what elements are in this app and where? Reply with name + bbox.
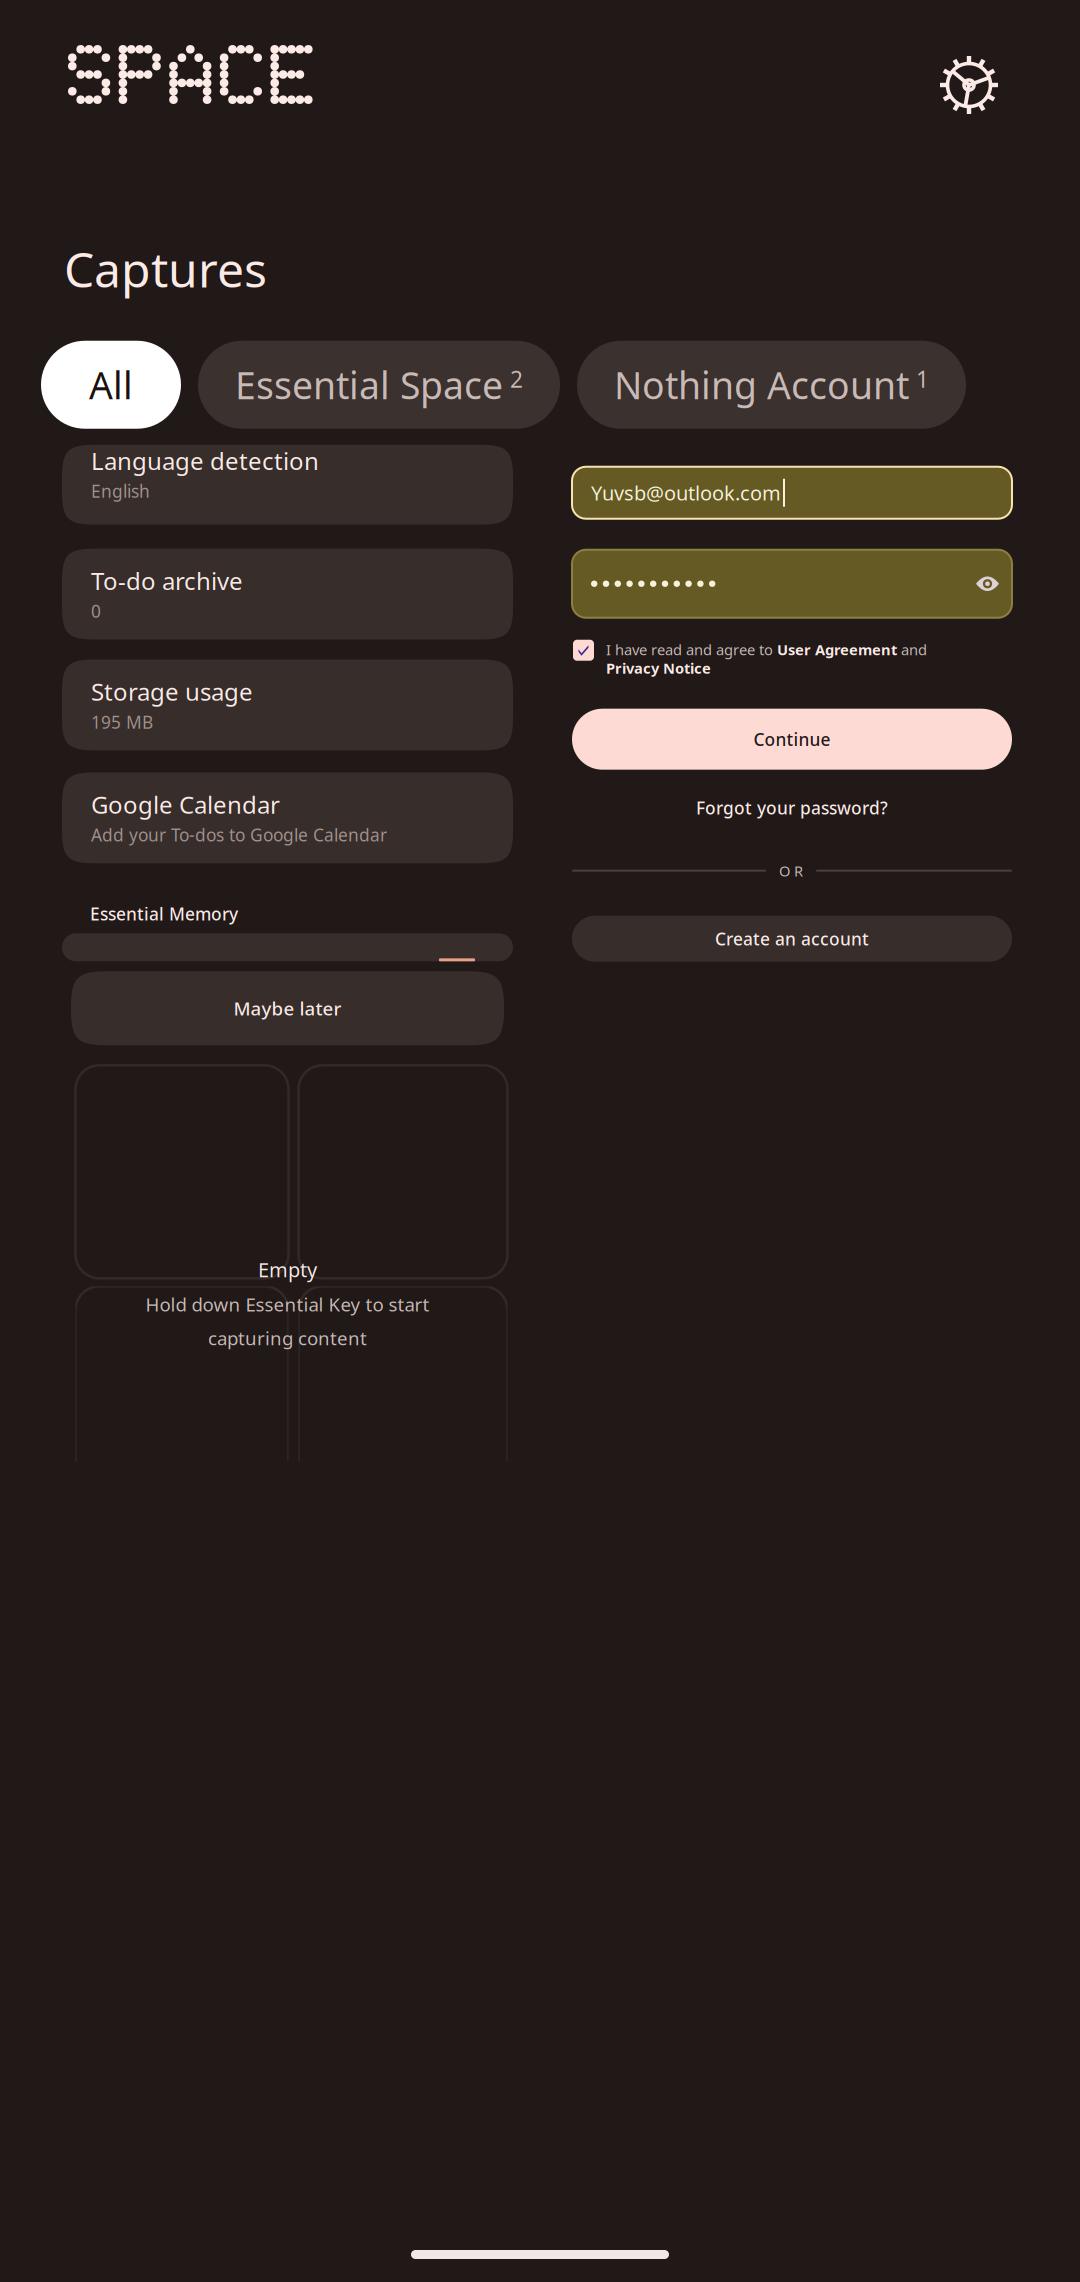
staticText: Empty [258, 1256, 317, 1283]
staticText: English [91, 480, 150, 503]
staticText: Continue [753, 728, 830, 751]
staticText: Hold down Essential Key to start [145, 1292, 429, 1317]
staticText: capturing content [208, 1326, 367, 1350]
staticText: Language detection [91, 445, 319, 477]
staticText: All [89, 360, 133, 410]
staticText: Forgot your password? [696, 796, 888, 819]
staticText: To-do archive [91, 565, 243, 596]
button[interactable]: Continue [572, 709, 1012, 770]
button[interactable]: Settings [939, 0, 999, 115]
staticText: Maybe later [233, 996, 341, 1021]
staticText: Nothing Account [614, 360, 909, 410]
button[interactable]: Nothing Account [577, 341, 966, 429]
staticText: Add your To-dos to Google Calendar [91, 823, 387, 846]
staticText: 2 [510, 364, 523, 394]
staticText: Storage usage [91, 675, 253, 707]
staticText: 1 [916, 364, 929, 394]
button[interactable]: Maybe later [71, 971, 504, 1045]
staticText: Essential Memory [90, 902, 238, 925]
button[interactable]: Essential Space [198, 341, 560, 429]
staticText: Google Calendar [91, 788, 280, 820]
staticText: I have read and agree to [606, 640, 777, 659]
button[interactable]: All [41, 341, 181, 429]
button[interactable]: Forgot your password? [572, 786, 1012, 830]
staticText: Essential Space [235, 360, 503, 410]
button[interactable]: Storage usage [62, 659, 513, 750]
button[interactable]: To-do archive [62, 549, 513, 639]
button[interactable]: Google Calendar [62, 772, 513, 863]
staticText: Yuvsb@outlook.com [591, 479, 781, 506]
button[interactable]: Language detection [62, 445, 513, 525]
staticText: User Agreement [777, 640, 897, 659]
staticText: 0 [91, 599, 101, 622]
button[interactable]: Agree to the user agreement [573, 640, 594, 661]
staticText: and [897, 640, 927, 659]
button[interactable]: Create an account [572, 916, 1012, 962]
staticText: 195 MB [91, 710, 153, 733]
staticText: Captures [64, 237, 267, 301]
staticText: Privacy Notice [606, 658, 711, 678]
staticText: Create an account [715, 927, 869, 950]
staticText: O R [779, 861, 803, 880]
